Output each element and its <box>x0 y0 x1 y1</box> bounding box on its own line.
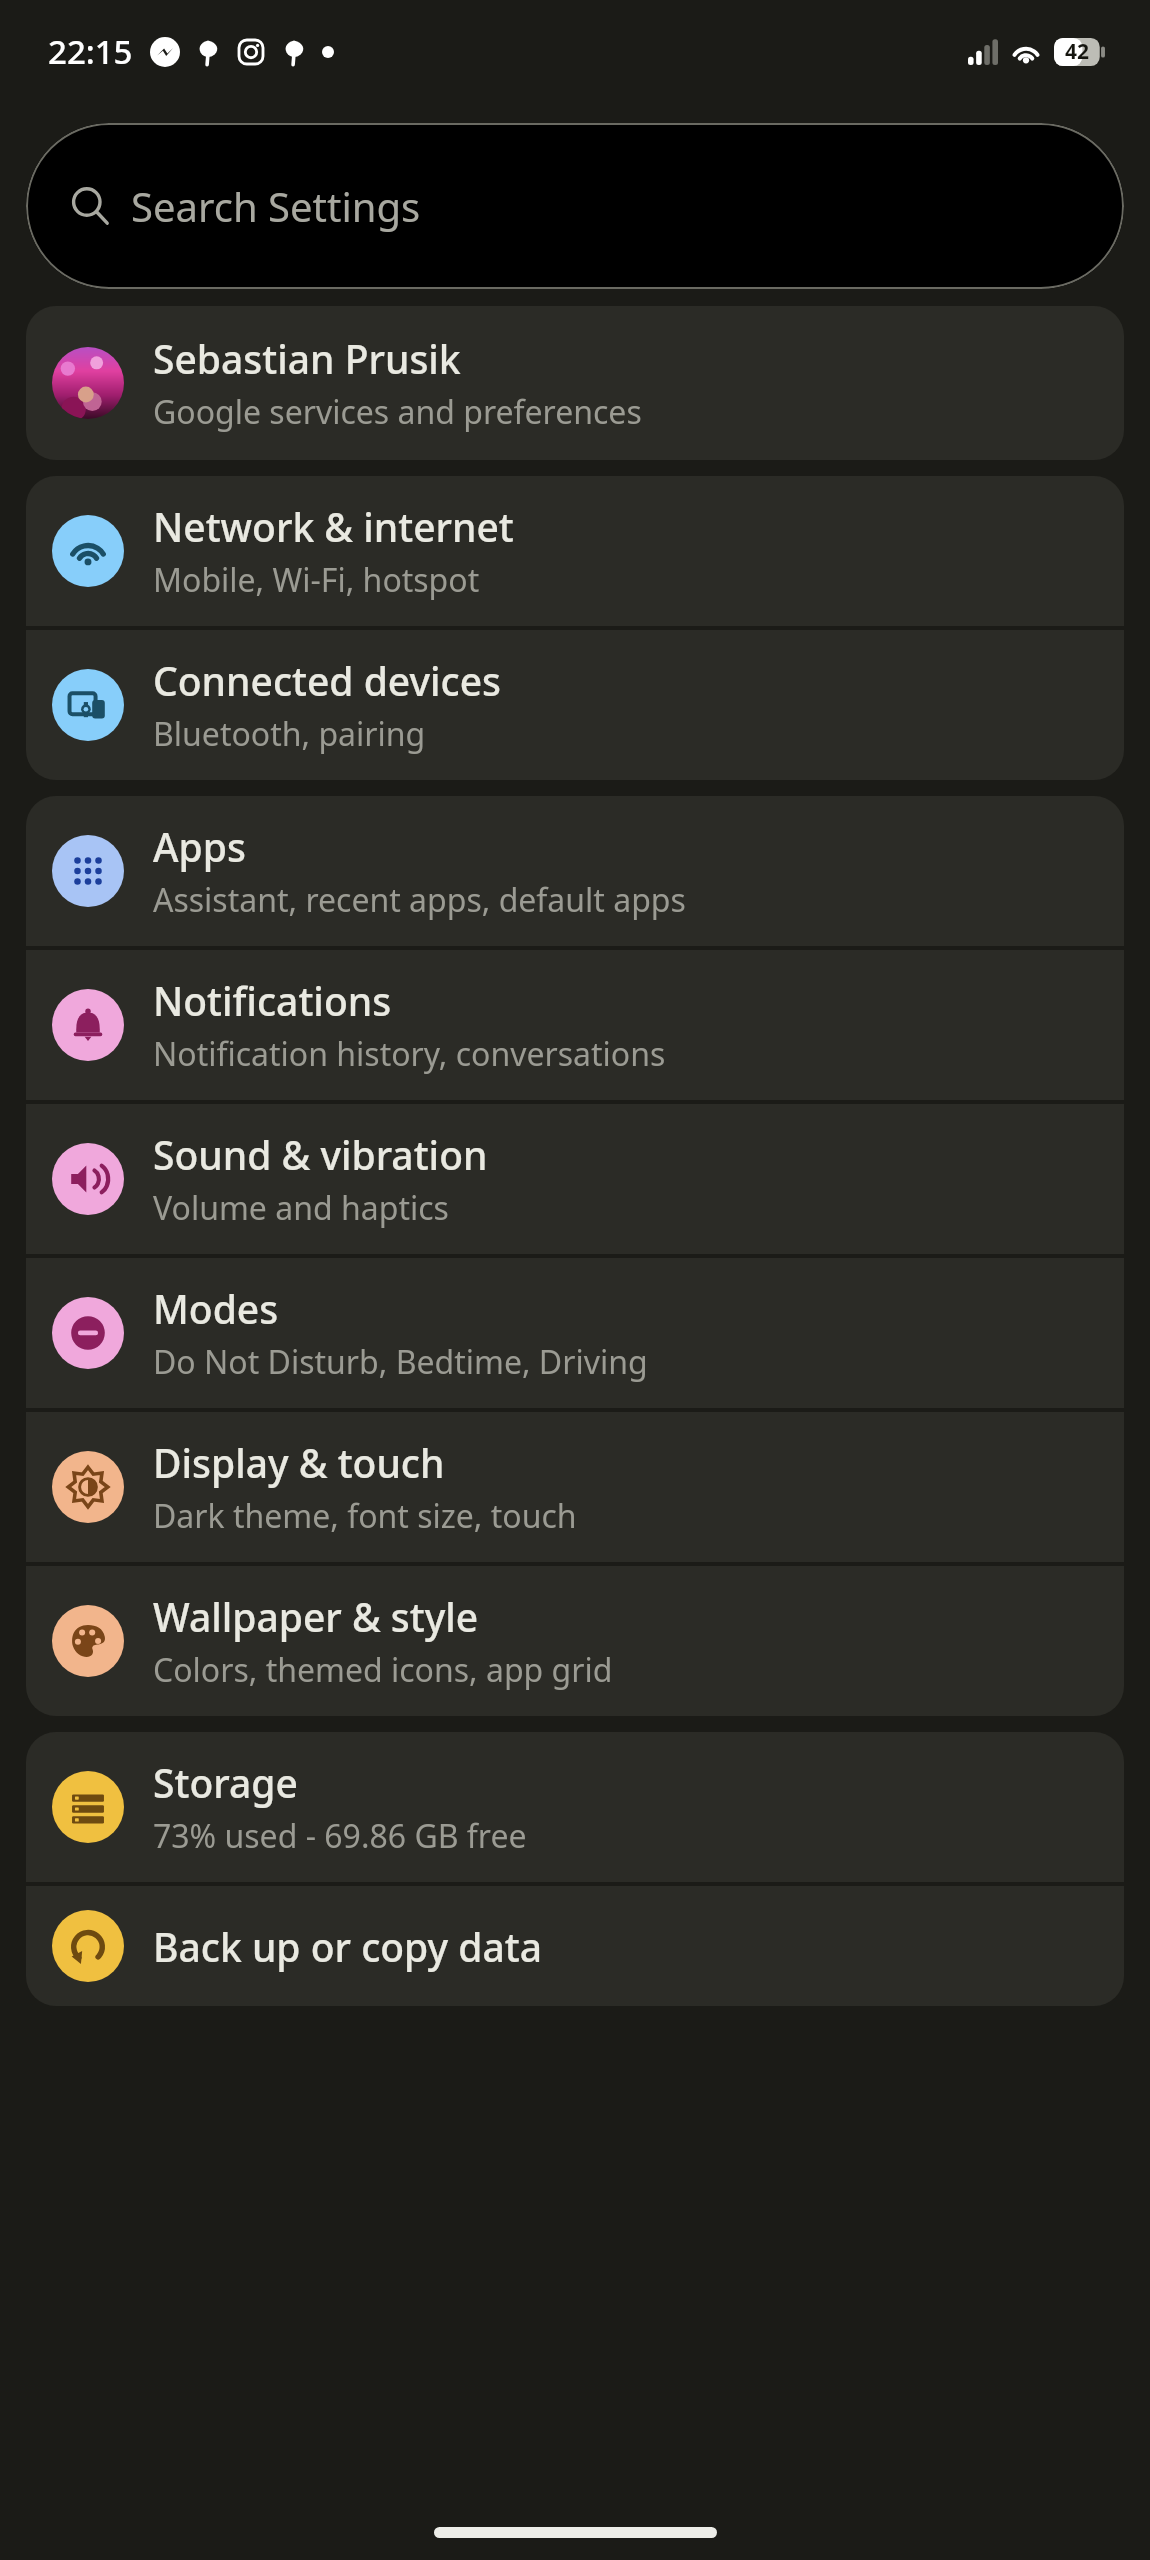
staticText: Sound & vibration <box>153 1128 488 1181</box>
staticText: Bluetooth, pairing <box>153 712 426 756</box>
staticText: Display & touch <box>153 1436 445 1489</box>
button[interactable]: Sound & vibration <box>26 1104 1124 1254</box>
button[interactable]: Storage <box>26 1732 1124 1882</box>
staticText: Notifications <box>153 974 392 1027</box>
button[interactable]: Modes <box>26 1258 1124 1408</box>
button[interactable]: Sebastian Prusik <box>26 306 1124 460</box>
staticText: Modes <box>153 1282 279 1335</box>
button[interactable]: Search Settings <box>26 123 1124 289</box>
staticText: Wallpaper & style <box>153 1590 479 1643</box>
button[interactable]: Back up or copy data <box>26 1886 1124 2006</box>
staticText: Back up or copy data <box>153 1920 542 1973</box>
staticText: Assistant, recent apps, default apps <box>153 878 686 922</box>
staticText: Sebastian Prusik <box>153 332 461 385</box>
staticText: 73% used - 69.86 GB free <box>153 1814 527 1858</box>
button[interactable]: Network & internet <box>26 476 1124 626</box>
staticText: Dark theme, font size, touch <box>153 1494 577 1538</box>
button[interactable]: Apps <box>26 796 1124 946</box>
button[interactable]: Notifications <box>26 950 1124 1100</box>
staticText: Search Settings <box>131 179 421 233</box>
staticText: Notification history, conversations <box>153 1032 666 1076</box>
button[interactable]: Wallpaper & style <box>26 1566 1124 1716</box>
staticText: 42 <box>1065 37 1090 66</box>
staticText: Mobile, Wi-Fi, hotspot <box>153 558 480 602</box>
staticText: Storage <box>153 1756 298 1809</box>
staticText: 22:15 <box>48 29 133 74</box>
staticText: Connected devices <box>153 654 502 707</box>
staticText: Google services and preferences <box>153 390 642 434</box>
staticText: Volume and haptics <box>153 1186 449 1230</box>
staticText: Apps <box>153 820 246 873</box>
staticText: Do Not Disturb, Bedtime, Driving <box>153 1340 648 1384</box>
button[interactable]: Display & touch <box>26 1412 1124 1562</box>
button[interactable]: Connected devices <box>26 630 1124 780</box>
staticText: Network & internet <box>153 500 514 553</box>
staticText: Colors, themed icons, app grid <box>153 1648 613 1692</box>
